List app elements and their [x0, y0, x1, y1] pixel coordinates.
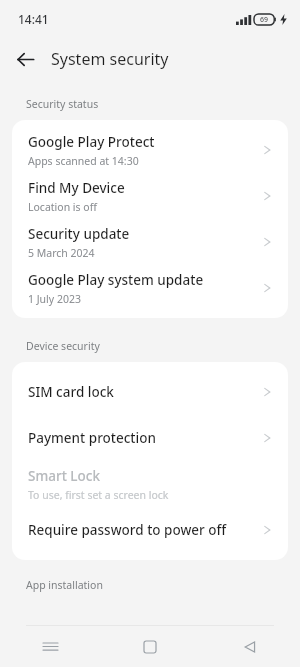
button[interactable]: Recent apps: [0, 626, 100, 667]
staticText: 14:41: [18, 11, 49, 27]
staticText: SIM card lock: [28, 383, 114, 401]
button[interactable]: Back: [200, 626, 300, 667]
staticText: 69: [260, 15, 269, 25]
staticText: Require password to power off: [28, 521, 227, 539]
button[interactable]: Security update: [12, 219, 288, 265]
staticText: Device security: [26, 339, 100, 353]
staticText: 1 July 2023: [28, 292, 81, 306]
button: Smart Lock: [12, 461, 288, 507]
staticText: Smart Lock: [28, 467, 100, 485]
staticText: Security update: [28, 225, 130, 243]
staticText: Find My Device: [28, 179, 125, 197]
button[interactable]: Home: [100, 626, 200, 667]
staticText: System security: [51, 48, 169, 70]
staticText: Payment protection: [28, 429, 156, 447]
staticText: Apps scanned at 14:30: [28, 154, 139, 168]
staticText: Google Play Protect: [28, 133, 155, 151]
button[interactable]: Back: [7, 41, 43, 77]
staticText: Security status: [26, 97, 99, 111]
staticText: Google Play system update: [28, 271, 204, 289]
staticText: Location is off: [28, 200, 97, 214]
button[interactable]: Payment protection: [12, 415, 288, 461]
staticText: To use, first set a screen lock: [28, 488, 169, 502]
button[interactable]: SIM card lock: [12, 369, 288, 415]
staticText: 5 March 2024: [28, 246, 95, 260]
staticText: App installation: [26, 578, 103, 592]
button[interactable]: Find My Device: [12, 173, 288, 219]
button[interactable]: Require password to power off: [12, 507, 288, 553]
button[interactable]: Google Play Protect: [12, 127, 288, 173]
button[interactable]: Google Play system update: [12, 265, 288, 311]
